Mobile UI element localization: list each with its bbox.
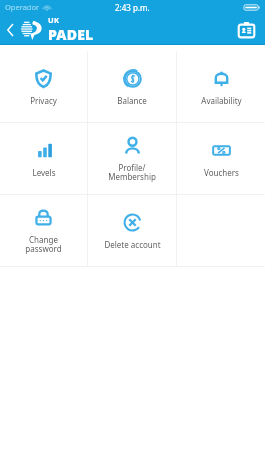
staticText: Availability [201,95,242,106]
button[interactable]: Levels [0,123,87,195]
staticText: Vouchers [204,167,239,178]
staticText: Levels [32,167,56,178]
button[interactable]: Privacy [0,51,87,123]
button[interactable]: Back [0,16,20,44]
staticText: UK [48,15,60,25]
button[interactable]: Vouchers [177,123,265,195]
button[interactable]: Availability [177,51,265,123]
staticText: PADEL [48,25,94,44]
button[interactable]: Balance [88,51,176,123]
staticText: Delete account [104,239,161,250]
staticText: Balance [117,95,147,106]
staticText: Operador [5,2,40,12]
button[interactable]: UK [20,15,94,44]
button[interactable]: Delete account [88,195,176,267]
button[interactable]: Change password [0,195,87,267]
staticText: Change password [25,234,62,255]
staticText: Privacy [30,95,57,106]
button[interactable]: Membership card [235,19,257,41]
staticText: Profile/ Membership [108,162,156,183]
button[interactable]: Profile/ Membership [88,123,176,195]
staticText: 2:43 p.m. [115,2,150,13]
